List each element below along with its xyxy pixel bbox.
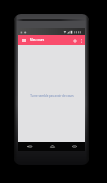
- button[interactable]: Back: [18, 142, 41, 151]
- button[interactable]: Menu: [20, 37, 27, 44]
- button[interactable]: Home: [41, 142, 63, 151]
- button[interactable]: Recents: [63, 142, 85, 151]
- button[interactable]: More options: [78, 37, 85, 44]
- staticText: Tu ne semble pas avoir de cours: [30, 94, 74, 98]
- staticText: Mes cours: [30, 38, 45, 42]
- button[interactable]: Add: [71, 37, 78, 44]
